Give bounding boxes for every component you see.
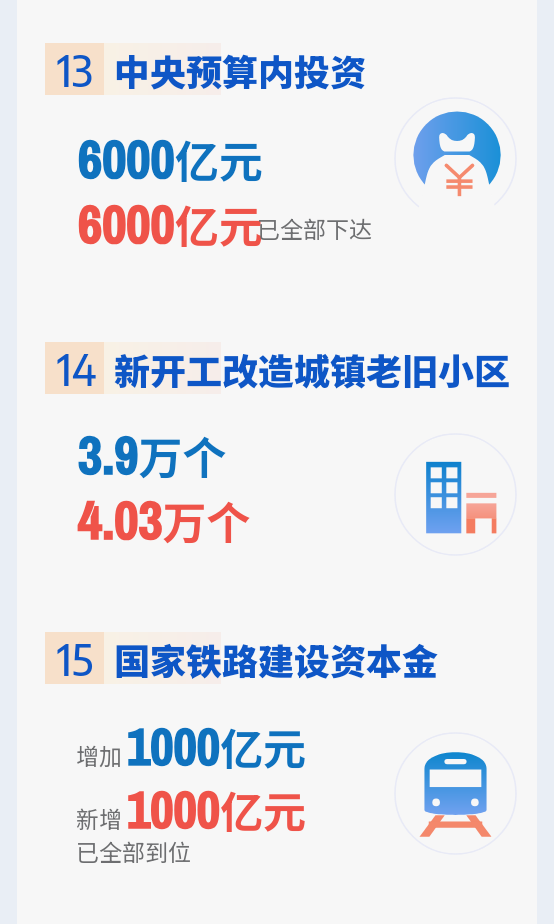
button[interactable]: 新开工改造城镇老旧小区: [394, 433, 517, 556]
staticText: 新开工改造城镇老旧小区: [114, 343, 511, 395]
staticText: 新增: [76, 801, 122, 834]
button[interactable]: 14: [17, 342, 537, 394]
staticText: 国家铁路建设资本金: [114, 633, 439, 685]
staticText: 6000亿元: [78, 123, 263, 194]
button[interactable]: 国家铁路建设资本金: [394, 732, 517, 855]
staticText: 已全部下达: [257, 211, 372, 244]
staticText: 4.03万个: [78, 484, 251, 555]
button[interactable]: 13: [17, 43, 537, 95]
staticText: 6000亿元: [78, 188, 263, 259]
staticText: 15: [57, 632, 93, 684]
staticText: 13: [57, 43, 93, 95]
staticText: 1000亿元: [127, 775, 307, 844]
staticText: 14: [57, 342, 97, 394]
staticText: 中央预算内投资: [114, 44, 367, 96]
staticText: 3.9万个: [78, 419, 227, 490]
staticText: 增加: [76, 738, 122, 771]
staticText: 已全部到位: [76, 834, 191, 867]
button[interactable]: 中央预算内投资: [394, 97, 517, 220]
staticText: 1000亿元: [127, 712, 307, 781]
button[interactable]: 15: [17, 632, 537, 684]
